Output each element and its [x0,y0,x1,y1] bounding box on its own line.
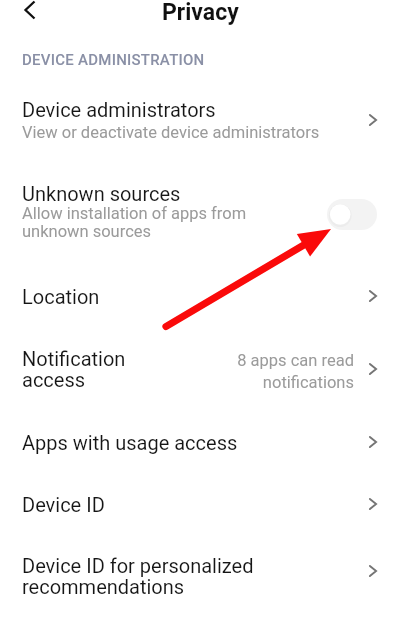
button[interactable]: Device ID for personalized recommendatio… [0,540,400,602]
staticText: Location [22,285,100,308]
button[interactable]: Unknown sources switch, off [327,199,377,230]
button[interactable]: Location [0,272,400,314]
button[interactable]: Unknown sources [0,166,400,240]
staticText: DEVICE ADMINISTRATION [22,51,205,69]
staticText: Device ID for personalized recommendatio… [22,554,254,599]
staticText: Notification access [22,347,126,392]
staticText: Unknown sources [22,182,181,205]
button[interactable]: Apps with usage access [0,420,400,462]
button[interactable]: Device ID [0,482,400,524]
staticText: Device administrators [22,98,216,121]
button[interactable]: Notification access [0,330,400,396]
button[interactable]: Back [16,0,44,24]
staticText: Privacy [162,0,239,26]
staticText: 8 apps can read notifications [232,351,354,392]
button[interactable]: Device administrators [0,82,400,142]
staticText: Apps with usage access [22,431,238,454]
staticText: Allow installation of apps from unknown … [22,204,247,241]
staticText: Device ID [22,493,105,516]
staticText: View or deactivate device administrators [22,123,320,142]
